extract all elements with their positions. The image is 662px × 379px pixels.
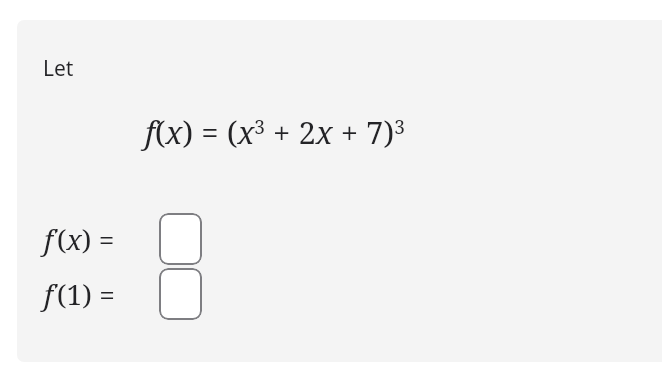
staticText: f′(1) =	[44, 275, 115, 313]
staticText: Let	[43, 54, 74, 83]
staticText: f(x) = (x3 + 2x + 7)3	[145, 111, 405, 153]
staticText: f′(x) =	[44, 220, 115, 258]
button[interactable]: Answer for f prime of 1	[159, 268, 202, 320]
button[interactable]: Answer for f prime of x	[159, 213, 202, 265]
